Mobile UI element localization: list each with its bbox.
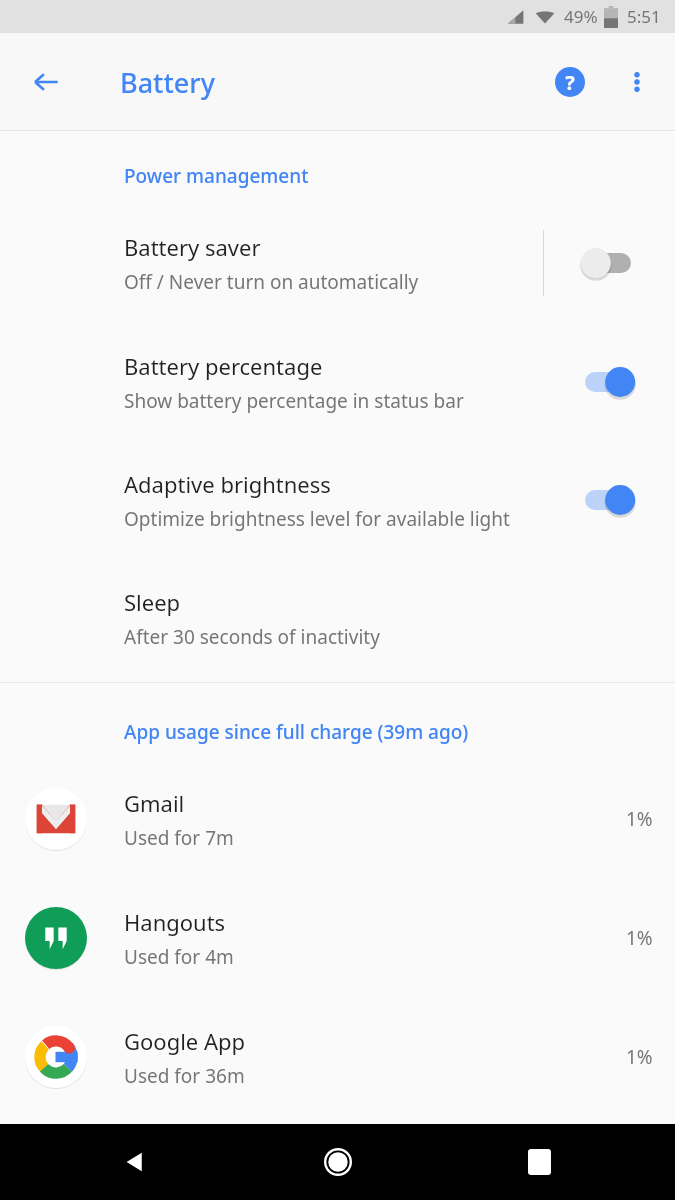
staticText: Battery percentage: [124, 351, 323, 381]
button[interactable]: Adaptive brightness: [0, 454, 675, 546]
staticText: Optimize brightness level for available …: [124, 506, 510, 532]
staticText: Used for 7m: [124, 825, 234, 851]
staticText: Used for 36m: [124, 1063, 245, 1089]
staticText: Hangouts: [124, 907, 226, 937]
button[interactable]: Gmail: [0, 773, 675, 865]
staticText: 1%: [626, 925, 653, 951]
staticText: Battery: [120, 64, 215, 101]
staticText: 49%: [564, 5, 598, 28]
button[interactable]: More options: [613, 58, 661, 106]
button[interactable]: Back: [22, 58, 70, 106]
button[interactable]: Hangouts: [0, 892, 675, 984]
staticText: 1%: [626, 806, 653, 832]
button[interactable]: Battery saver: [0, 217, 675, 309]
button[interactable]: Toggle off: [575, 241, 641, 285]
button[interactable]: Recent apps: [511, 1134, 567, 1190]
staticText: Battery saver: [124, 232, 261, 262]
staticText: App usage since full charge (39m ago): [124, 719, 469, 745]
staticText: Power management: [124, 163, 309, 189]
button[interactable]: Toggle on: [575, 360, 641, 404]
staticText: Gmail: [124, 788, 185, 818]
staticText: 5:51: [627, 5, 661, 28]
staticText: ?: [565, 69, 575, 96]
staticText: Sleep: [124, 587, 181, 617]
staticText: Off / Never turn on automatically: [124, 269, 419, 295]
button[interactable]: Battery percentage: [0, 336, 675, 428]
staticText: Show battery percentage in status bar: [124, 388, 464, 414]
button[interactable]: Google App: [0, 1011, 675, 1103]
staticText: Used for 4m: [124, 944, 234, 970]
button[interactable]: Home: [310, 1134, 366, 1190]
button[interactable]: Sleep: [0, 572, 675, 664]
staticText: Adaptive brightness: [124, 469, 331, 499]
staticText: 1%: [626, 1044, 653, 1070]
staticText: After 30 seconds of inactivity: [124, 624, 380, 650]
button[interactable]: Help: [546, 58, 594, 106]
button[interactable]: Toggle on: [575, 478, 641, 522]
staticText: Google App: [124, 1026, 246, 1056]
button[interactable]: Back: [108, 1134, 164, 1190]
